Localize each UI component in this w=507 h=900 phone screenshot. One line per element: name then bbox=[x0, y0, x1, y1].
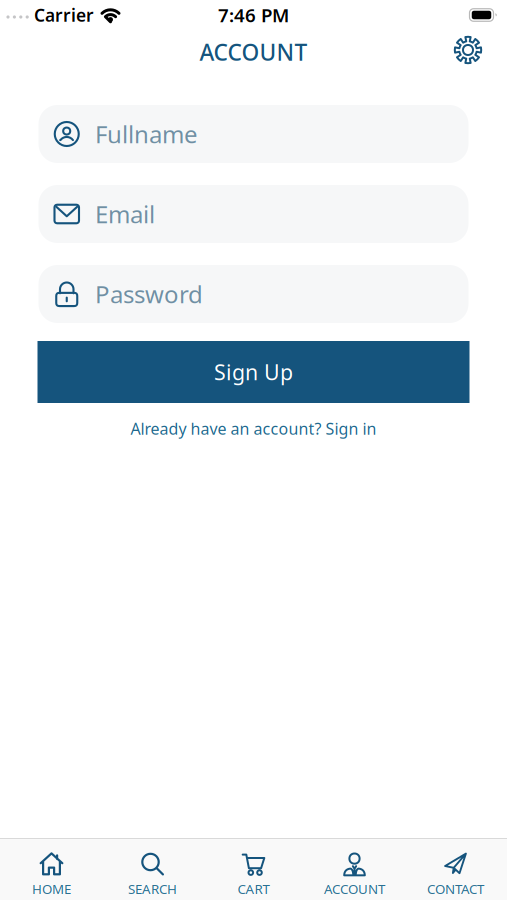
button[interactable]: Email bbox=[38, 185, 468, 243]
staticText: ACCOUNT bbox=[199, 37, 307, 67]
staticText: Fullname bbox=[95, 118, 198, 150]
staticText: Carrier bbox=[34, 3, 94, 26]
button[interactable]: Password bbox=[38, 265, 468, 323]
button[interactable]: Fullname bbox=[38, 105, 468, 163]
staticText: Sign Up bbox=[214, 358, 293, 386]
staticText: CONTACT bbox=[427, 880, 484, 898]
button[interactable]: ACCOUNT bbox=[304, 839, 405, 900]
staticText: ACCOUNT bbox=[324, 880, 385, 898]
staticText: SEARCH bbox=[128, 880, 177, 898]
button[interactable]: CONTACT bbox=[405, 839, 506, 900]
staticText: Password bbox=[95, 278, 203, 310]
staticText: 7:46 PM bbox=[218, 3, 289, 27]
staticText: CART bbox=[237, 880, 269, 898]
button[interactable]: Sign Up bbox=[37, 341, 469, 403]
button[interactable]: Already have an account? Sign in bbox=[130, 418, 376, 439]
button[interactable]: HOME bbox=[1, 839, 102, 900]
staticText: Email bbox=[95, 198, 155, 230]
staticText: Already have an account? Sign in bbox=[130, 418, 376, 439]
staticText: HOME bbox=[32, 880, 71, 898]
button[interactable]: SEARCH bbox=[102, 839, 203, 900]
button[interactable] bbox=[454, 36, 482, 64]
button[interactable]: CART bbox=[203, 839, 304, 900]
